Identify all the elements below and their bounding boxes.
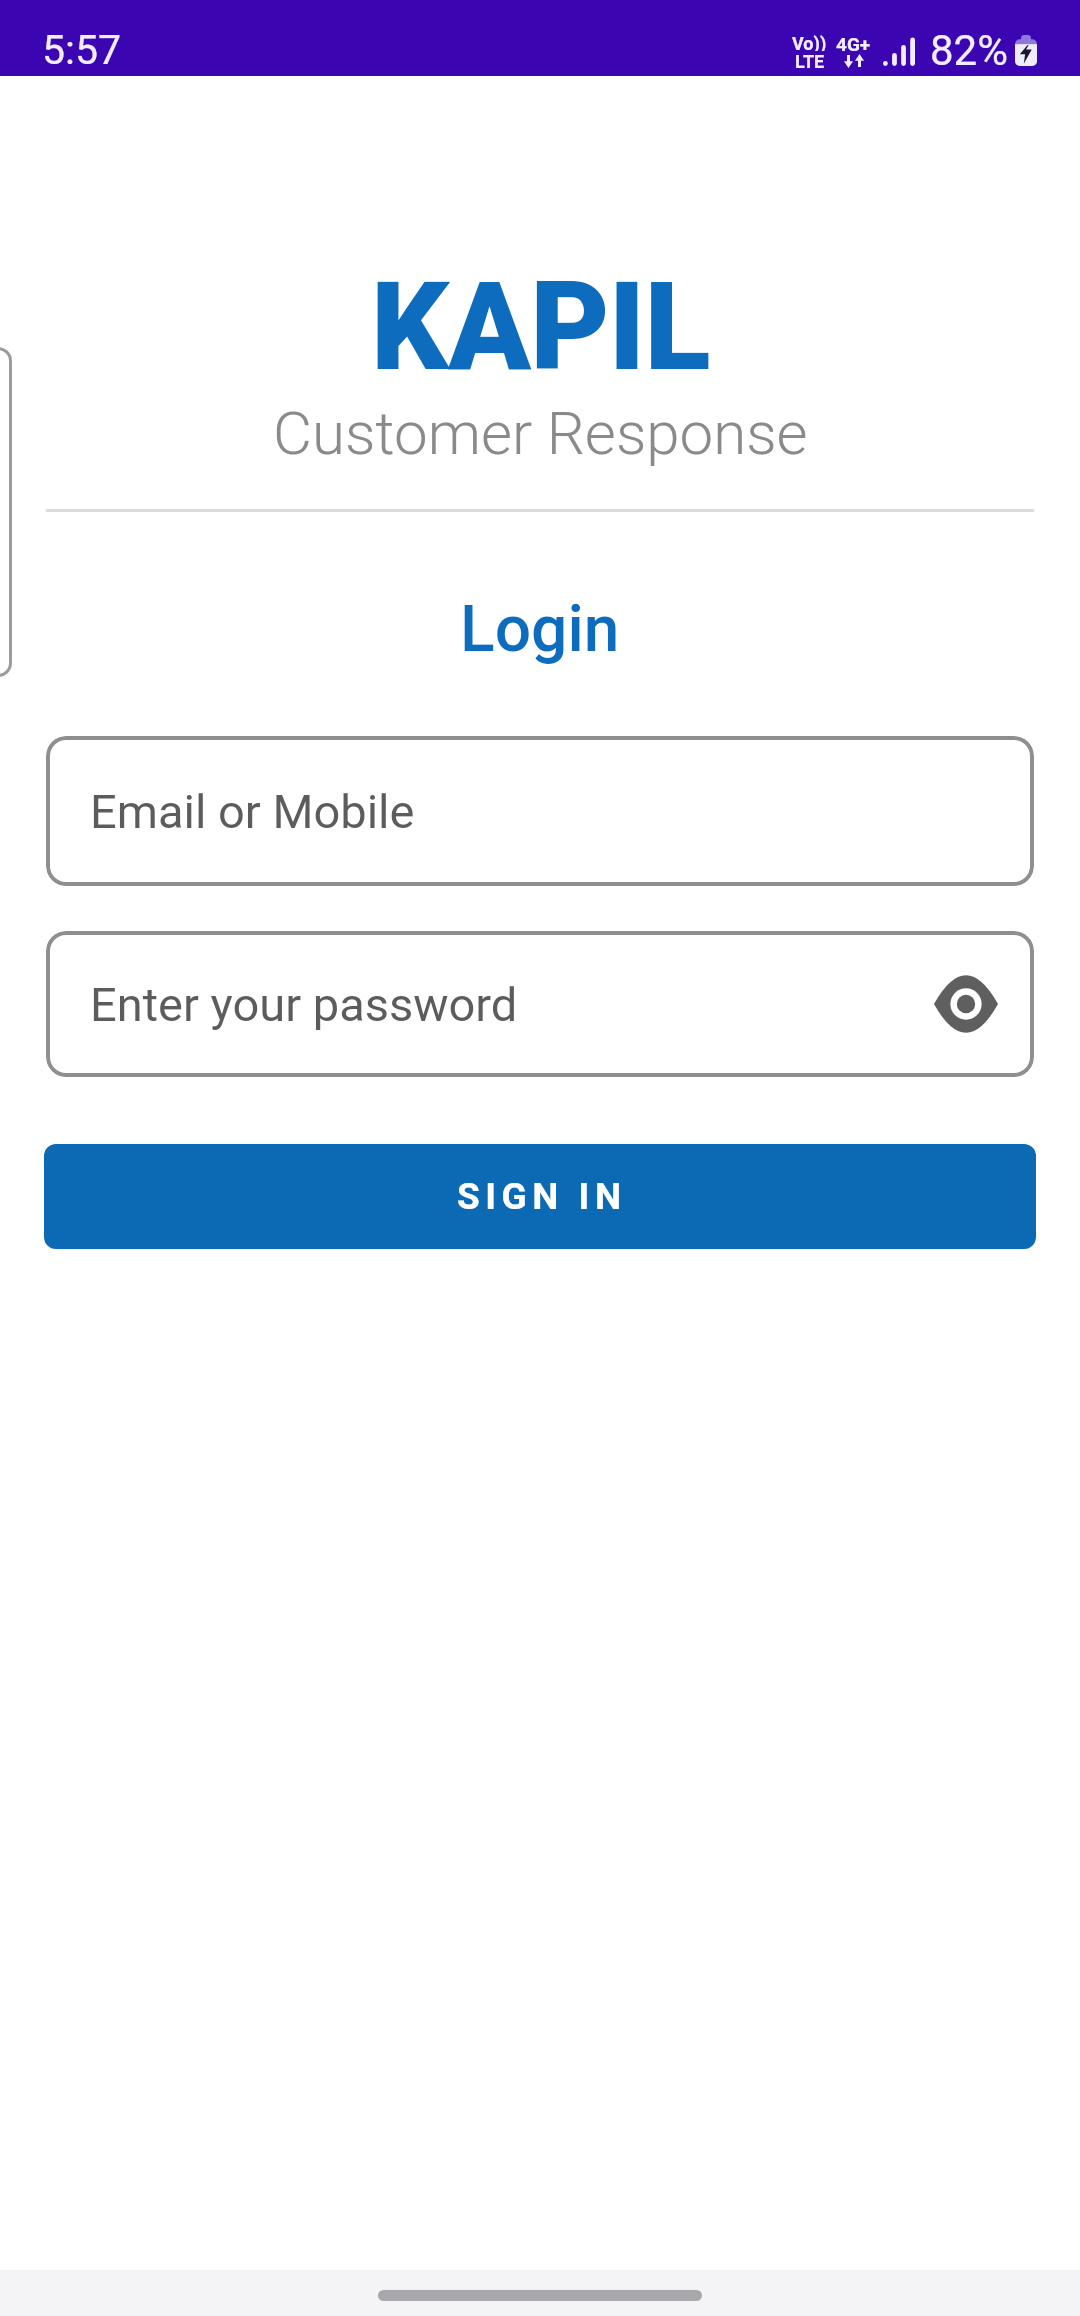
button[interactable]: SIGN IN: [44, 1144, 1036, 1249]
staticText: Login: [460, 592, 620, 667]
staticText: Vo)): [792, 33, 827, 51]
staticText: Customer Response: [273, 398, 808, 468]
button[interactable]: [934, 981, 998, 1027]
staticText: LTE: [795, 51, 825, 69]
staticText: Enter your password: [90, 977, 518, 1032]
staticText: SIGN IN: [457, 1175, 627, 1218]
staticText: KAPIL: [371, 256, 710, 399]
staticText: 82%: [930, 26, 1008, 75]
staticText: 4G+: [836, 33, 871, 51]
staticText: Email or Mobile: [90, 784, 415, 839]
staticText: 5:57: [42, 26, 122, 74]
button[interactable]: Email or Mobile: [46, 736, 1034, 886]
button[interactable]: Enter your password: [46, 931, 1034, 1077]
